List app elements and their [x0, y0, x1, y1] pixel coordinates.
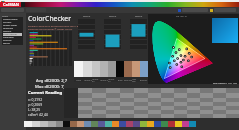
staticText: cd/m²: 42,44	[28, 112, 48, 117]
button[interactable]: Color preview	[212, 18, 238, 43]
staticText: Neutral 5	[100, 79, 108, 81]
staticText: CIE 1931 xy	[176, 15, 187, 18]
button[interactable]: Gamma	[3, 30, 22, 33]
staticText: White	[76, 79, 81, 81]
button[interactable]: Neutral 5	[100, 61, 108, 82]
button[interactable]: Saturation	[3, 36, 22, 39]
button[interactable]: Neutral 6.5	[92, 61, 100, 82]
staticText: Blue Sky	[140, 79, 148, 81]
staticText: ColorChecker	[3, 33, 17, 36]
staticText: Gamma	[3, 30, 12, 33]
button[interactable]: Neutral 3.5	[108, 61, 116, 82]
staticText: Avg dE2000: 2,7	[36, 78, 68, 84]
staticText: ColorChecker	[28, 14, 71, 23]
staticText: Delta E	[83, 15, 91, 18]
button[interactable]: Session Setup	[3, 18, 22, 21]
staticText: Steps	[2, 14, 9, 17]
staticText: Max dE2000: 7,8	[35, 84, 68, 90]
button[interactable]: Dark Skin	[124, 61, 132, 82]
button[interactable]: Pre-Test	[3, 21, 22, 24]
button[interactable]: Grayscale	[3, 27, 22, 30]
staticText: Post-Cal	[3, 39, 12, 42]
staticText: Neutral 3.5	[108, 78, 116, 82]
button[interactable]: CalMAN home	[0, 2, 21, 7]
staticText: Pre-Test	[3, 21, 12, 24]
staticText: x: 0,2192	[28, 97, 43, 102]
staticText: Report	[3, 42, 10, 44]
button[interactable]: Neutral 8	[83, 61, 92, 82]
button[interactable]: Black	[116, 61, 124, 82]
staticText: Display Setup	[3, 24, 17, 27]
button[interactable]: Light Skin	[132, 61, 140, 82]
staticText: Neutral 8	[84, 79, 92, 81]
staticText: Dark Skin	[124, 79, 132, 81]
button[interactable]: Report	[3, 42, 22, 44]
staticText: Session Setup	[3, 18, 18, 21]
staticText: Pantone ColorChecker® target colors.	[28, 27, 73, 30]
staticText: Grayscale	[3, 27, 13, 30]
staticText: Black	[118, 79, 123, 81]
button[interactable]: Display Setup	[3, 24, 22, 27]
button[interactable]: Blue Sky	[140, 61, 148, 82]
staticText: Light Skin	[132, 78, 140, 82]
button[interactable]: White	[74, 61, 83, 82]
staticText: y: 0,2069	[28, 102, 43, 107]
staticText: Current Reading	[28, 90, 63, 96]
button[interactable]: Post-Cal	[3, 39, 22, 42]
staticText: Neutral 6.5	[92, 78, 100, 82]
staticText: Delta E	[109, 15, 117, 18]
staticText: CalMAN	[3, 2, 19, 7]
button[interactable]: ColorChecker	[3, 33, 22, 36]
staticText: Saturation	[3, 36, 14, 39]
staticText: L: 38,25	[28, 107, 41, 112]
staticText: Delta E	[135, 15, 143, 18]
staticText: Displays analysis is performed with the …	[28, 24, 83, 27]
staticText: RGB Triplet: 0, 131, 163	[213, 82, 237, 85]
